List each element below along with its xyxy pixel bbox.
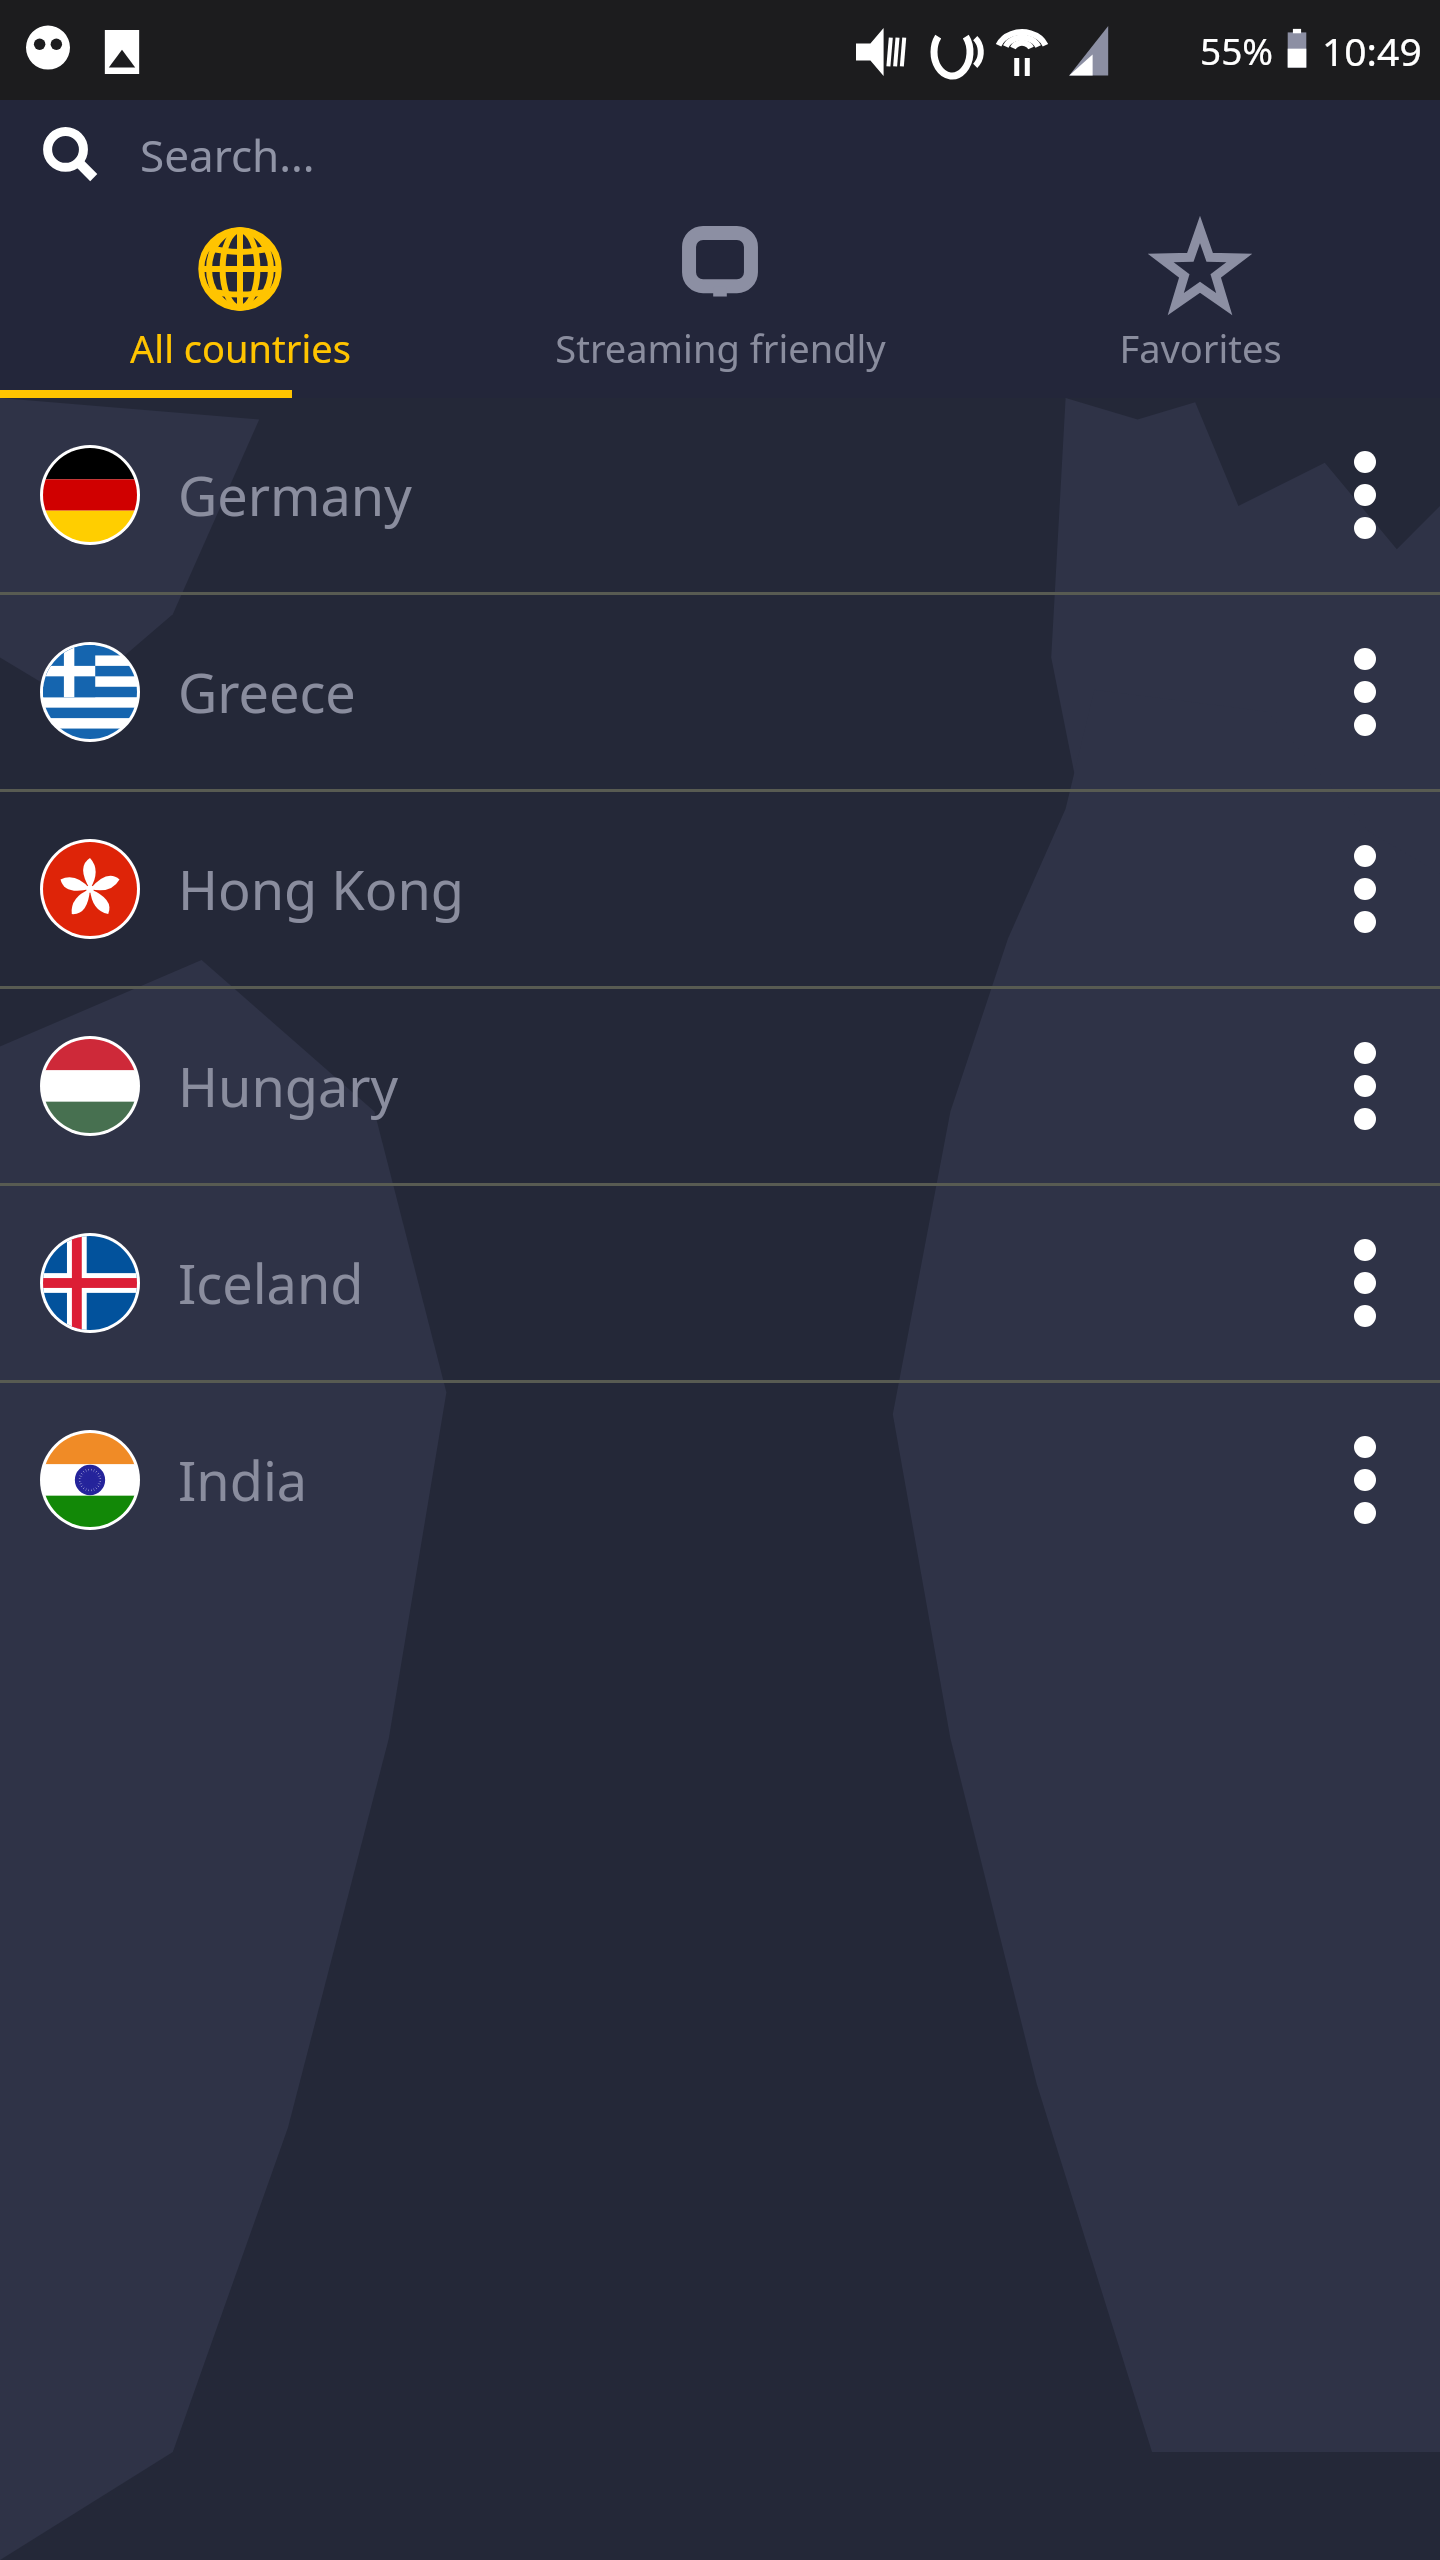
other: Search [0, 100, 140, 210]
button[interactable]: More options [1290, 1186, 1440, 1380]
button[interactable]: Hong Kong [0, 792, 1440, 986]
button[interactable]: Hungary [0, 989, 1440, 1183]
button[interactable]: More options [1290, 792, 1440, 986]
staticText: India [178, 1443, 308, 1517]
staticText: Germany [178, 458, 412, 532]
button[interactable]: India [0, 1383, 1440, 1577]
button[interactable]: More options [1290, 1383, 1440, 1577]
staticText: Greece [178, 655, 356, 729]
button[interactable]: All countries [0, 210, 480, 390]
button[interactable]: More options [1290, 989, 1440, 1183]
staticText: Search... [140, 125, 315, 185]
button[interactable]: Iceland [0, 1186, 1440, 1380]
button[interactable]: Streaming friendly [480, 210, 960, 390]
staticText: Hungary [178, 1049, 399, 1123]
button[interactable]: More options [1290, 595, 1440, 789]
staticText: Hong Kong [178, 852, 464, 926]
staticText: Iceland [178, 1246, 364, 1320]
button[interactable]: Favorites [960, 210, 1440, 390]
button[interactable]: More options [1290, 398, 1440, 592]
staticText: Streaming friendly [555, 322, 886, 374]
button[interactable]: Germany [0, 398, 1440, 592]
staticText: All countries [130, 322, 351, 374]
button[interactable]: Greece [0, 595, 1440, 789]
staticText: 10:49 [1322, 24, 1422, 77]
staticText: 55% [1200, 25, 1274, 75]
staticText: Favorites [1119, 322, 1282, 374]
button[interactable]: Search [0, 100, 1440, 210]
